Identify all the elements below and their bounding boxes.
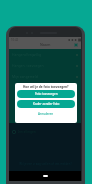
button[interactable]: Kader zonder foto bbox=[17, 100, 75, 108]
staticText: Naam bbox=[40, 42, 51, 47]
staticText: Kader zonder foto bbox=[33, 102, 60, 106]
staticText: 10:42 bbox=[11, 38, 19, 42]
staticText: Foto toevoegen bbox=[35, 92, 58, 96]
staticText: Mijn aangemeld bbox=[12, 74, 38, 79]
staticText: Hoe wil je de foto toevoegen? bbox=[23, 85, 69, 89]
button[interactable]: Annuleren bbox=[38, 112, 54, 116]
button[interactable]: Foto toevoegen bbox=[17, 90, 75, 98]
staticText: Instellingen bbox=[18, 130, 36, 134]
button[interactable]: Sluiten bbox=[73, 42, 79, 48]
